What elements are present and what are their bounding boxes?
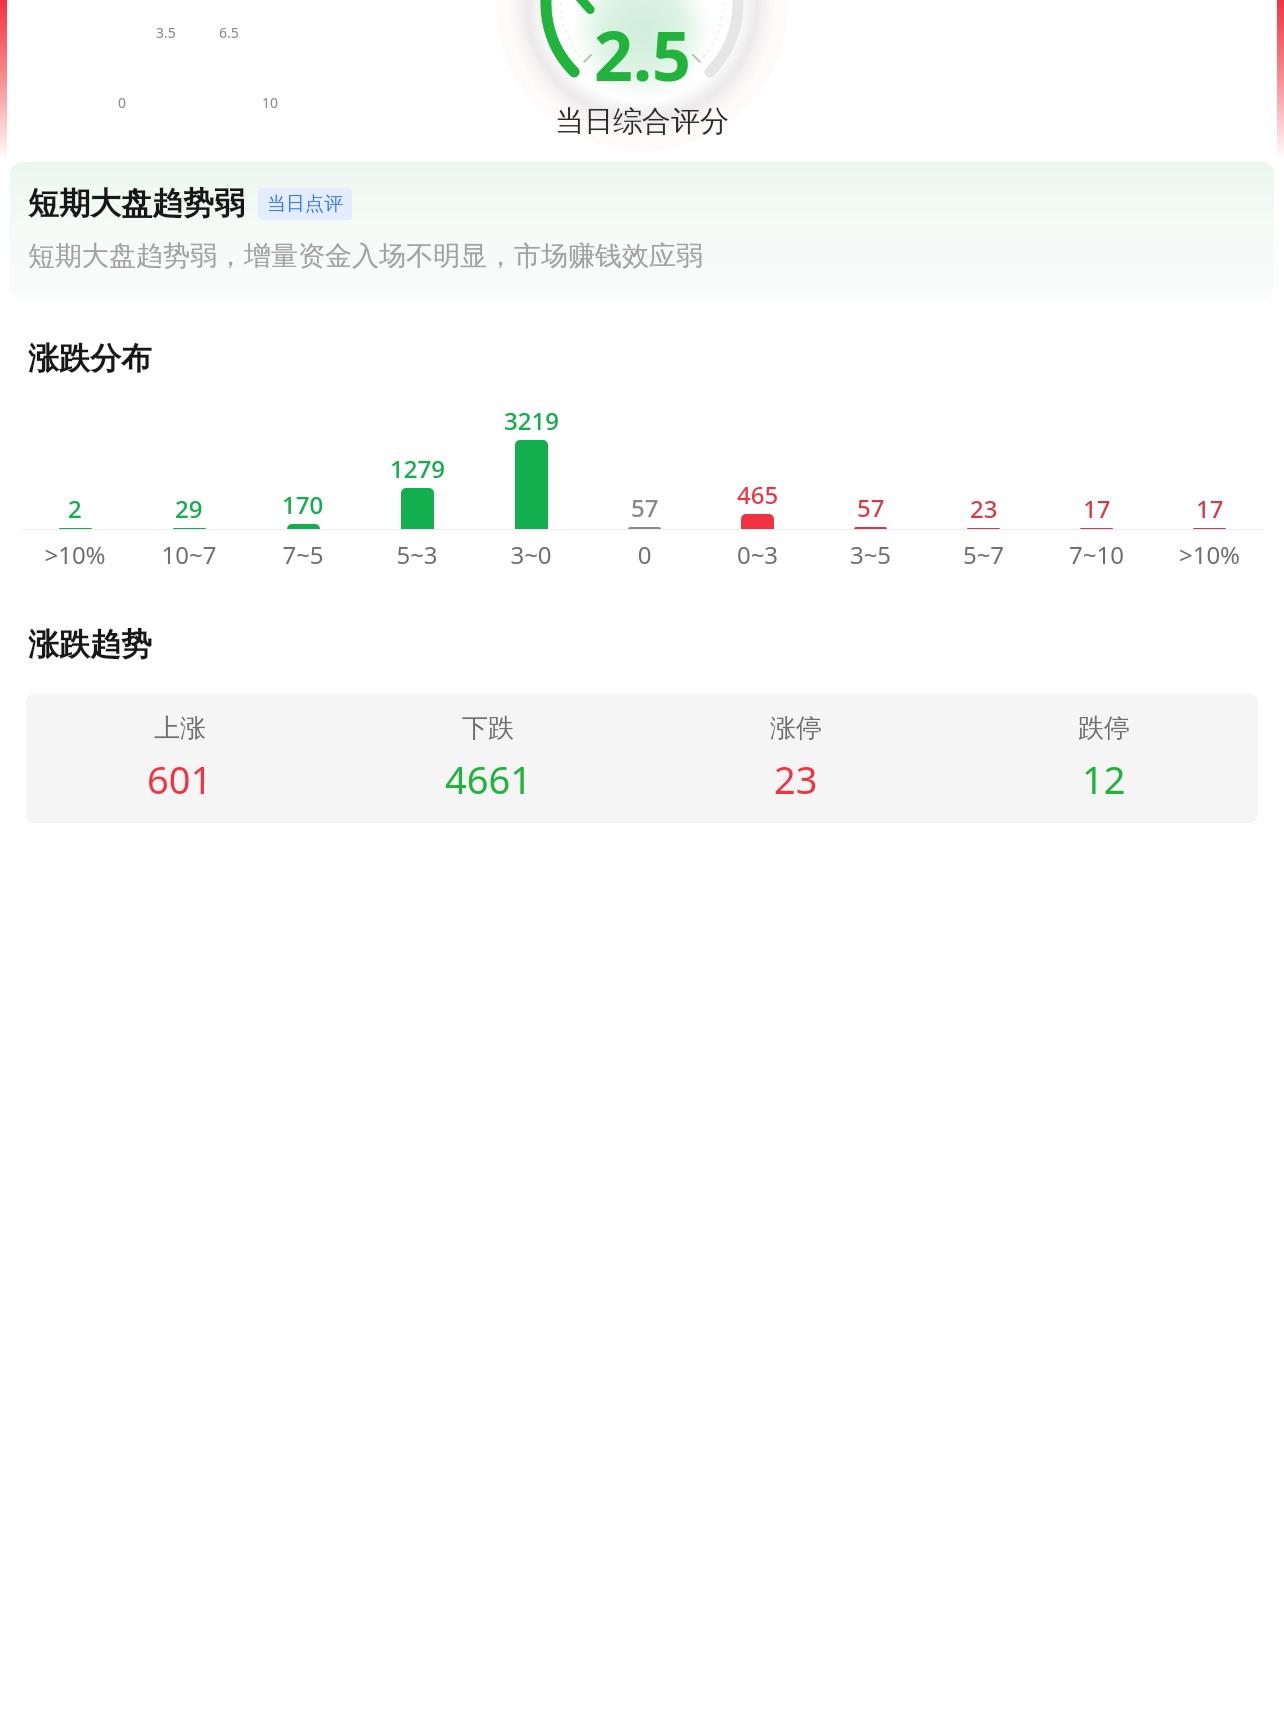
staticText: 6.5 <box>219 23 239 42</box>
staticText: >10% <box>1153 538 1266 571</box>
staticText: 601 <box>147 753 213 805</box>
staticText: 57 <box>857 491 885 524</box>
staticText: 0 <box>118 93 127 112</box>
staticText: 3~5 <box>814 538 927 571</box>
staticText: 当日点评 <box>267 192 343 216</box>
staticText: 涨跌趋势 <box>28 625 152 664</box>
staticText: 涨跌分布 <box>28 339 152 378</box>
button[interactable]: 下跌 <box>334 712 642 805</box>
staticText: 1279 <box>390 452 445 485</box>
staticText: 0~3 <box>701 538 814 571</box>
staticText: 3.5 <box>156 23 176 42</box>
staticText: 10 <box>262 93 279 112</box>
staticText: 上涨 <box>154 712 206 745</box>
staticText: 涨停 <box>770 712 822 745</box>
staticText: 5~7 <box>927 538 1040 571</box>
staticText: 12 <box>1082 753 1126 805</box>
staticText: 下跌 <box>462 712 514 745</box>
staticText: 2 <box>68 492 82 525</box>
staticText: 当日综合评分 <box>555 103 729 140</box>
staticText: 3~0 <box>474 538 588 571</box>
button[interactable]: 涨跌分布 <box>10 317 1274 585</box>
staticText: 17 <box>1196 492 1224 525</box>
staticText: 17 <box>1083 492 1111 525</box>
button[interactable]: 涨跌趋势 <box>10 603 1274 841</box>
button[interactable]: 短期大盘趋势弱 <box>10 162 1274 299</box>
staticText: 29 <box>175 492 203 525</box>
staticText: 2.5 <box>594 8 691 101</box>
staticText: 3219 <box>504 404 559 437</box>
staticText: 短期大盘趋势弱 <box>28 184 245 223</box>
button[interactable]: 涨停 <box>642 712 950 805</box>
staticText: 57 <box>631 491 659 524</box>
staticText: >10% <box>18 538 132 571</box>
staticText: 10~7 <box>132 538 246 571</box>
staticText: 23 <box>774 753 818 805</box>
staticText: 465 <box>737 478 779 511</box>
staticText: 0 <box>588 538 701 571</box>
button[interactable]: 上涨 <box>26 712 334 805</box>
staticText: 23 <box>970 492 998 525</box>
staticText: 170 <box>282 488 324 521</box>
staticText: 4661 <box>445 753 532 805</box>
button[interactable]: 跌停 <box>950 712 1258 805</box>
staticText: 跌停 <box>1078 712 1130 745</box>
staticText: 7~10 <box>1040 538 1153 571</box>
staticText: 5~3 <box>360 538 474 571</box>
staticText: 短期大盘趋势弱，增量资金入场不明显，市场赚钱效应弱 <box>28 239 703 273</box>
staticText: 7~5 <box>246 538 360 571</box>
